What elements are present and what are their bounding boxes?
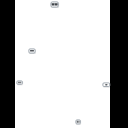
button[interactable]: Time chip xyxy=(49,0,60,9)
button[interactable]: Place one xyxy=(27,47,37,55)
button[interactable]: Place two xyxy=(15,79,24,86)
button[interactable]: Badge xyxy=(74,118,82,126)
button[interactable]: Place three xyxy=(101,81,112,88)
button[interactable]: Map surface xyxy=(15,0,110,128)
